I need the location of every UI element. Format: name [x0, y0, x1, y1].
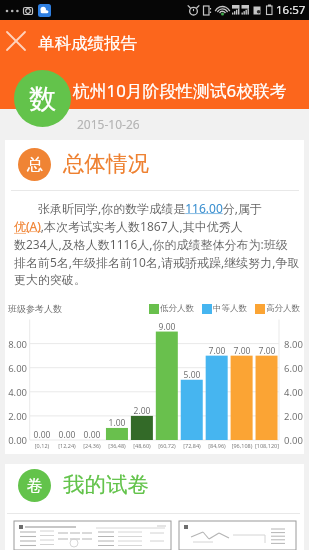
staticText: 0.00 — [30, 429, 54, 441]
staticText: 单科成绩报告 — [38, 33, 137, 54]
staticText: 7.00 — [255, 345, 279, 357]
button[interactable]: 卷 — [5, 464, 304, 511]
staticText: 张承昕同学,你的数学成绩是116.00分,属于 优(A),本次考试实考人数186… — [14, 200, 302, 288]
staticText: [60,72) — [154, 442, 180, 449]
staticText: 6.00 — [284, 362, 303, 375]
button[interactable]: 总 — [5, 140, 304, 187]
staticText: 我的试卷 — [63, 471, 149, 498]
staticText: 总 — [27, 155, 43, 175]
staticText: 0.00 — [80, 429, 104, 441]
staticText: 8.00 — [284, 338, 303, 351]
staticText: 0.00 — [6, 434, 27, 447]
staticText: 高分人数 — [266, 303, 300, 314]
staticText: [108,120] — [254, 442, 280, 449]
staticText: [84,96) — [204, 442, 230, 449]
staticText: 4.00 — [284, 386, 303, 399]
staticText: 8.00 — [6, 338, 27, 351]
staticText: 4.00 — [6, 386, 27, 399]
staticText: 班级参考人数 — [8, 303, 62, 314]
staticText: 2.00 — [6, 410, 27, 423]
staticText: 6.00 — [6, 362, 27, 375]
staticText: 中等人数 — [213, 303, 247, 314]
staticText: 16:57 — [276, 2, 306, 18]
staticText: 数 — [29, 82, 56, 116]
staticText: [96,108) — [229, 442, 255, 449]
staticText: 低分人数 — [160, 303, 194, 314]
button[interactable]: 数 — [14, 70, 71, 127]
staticText: 杭州10月阶段性测试6校联考 — [73, 79, 287, 102]
staticText: 5.00 — [180, 369, 204, 381]
staticText: [0,12) — [29, 442, 55, 449]
button[interactable]: Close — [0, 25, 32, 57]
staticText: 1.00 — [105, 417, 129, 429]
staticText: [48,60) — [129, 442, 155, 449]
staticText: 0.00 — [284, 434, 303, 447]
staticText: 2015-10-26 — [77, 116, 140, 132]
staticText: 0.00 — [55, 429, 79, 441]
staticText: [12,24) — [54, 442, 80, 449]
staticText: 2.00 — [130, 405, 154, 417]
staticText: 2.00 — [284, 410, 303, 423]
staticText: [72,84) — [179, 442, 205, 449]
button[interactable] — [14, 521, 171, 550]
staticText: 卷 — [27, 476, 43, 496]
staticText: 7.00 — [230, 345, 254, 357]
button[interactable] — [179, 521, 296, 550]
staticText: [36,48) — [104, 442, 130, 449]
staticText: [24,36) — [79, 442, 105, 449]
staticText: 总体情况 — [63, 150, 149, 177]
staticText: 9.00 — [155, 321, 179, 333]
staticText: 7.00 — [205, 345, 229, 357]
